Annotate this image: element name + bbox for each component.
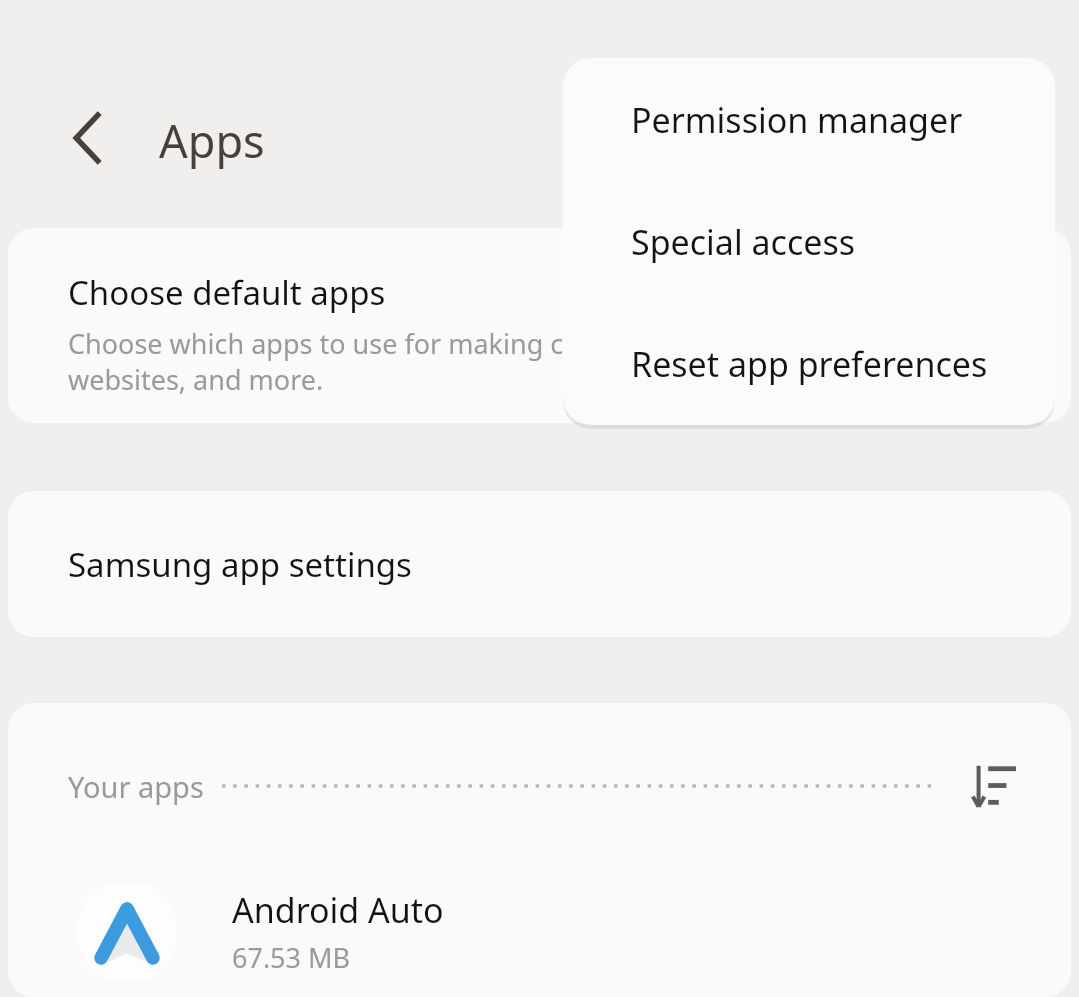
staticText: 67.53 MB bbox=[232, 939, 351, 976]
staticText: Android Auto bbox=[232, 887, 444, 933]
button[interactable]: Permission manager bbox=[563, 58, 1055, 181]
staticText: Samsung app settings bbox=[68, 542, 412, 587]
button[interactable]: Special access bbox=[563, 181, 1055, 303]
staticText: Special access bbox=[631, 219, 855, 265]
staticText: Reset app preferences bbox=[631, 341, 988, 387]
button[interactable]: Reset app preferences bbox=[563, 303, 1055, 425]
button[interactable]: Android Auto bbox=[8, 866, 1071, 997]
button[interactable]: Back bbox=[52, 98, 126, 178]
button[interactable]: Samsung app settings bbox=[8, 491, 1071, 637]
staticText: Choose default apps bbox=[68, 270, 386, 315]
staticText: Apps bbox=[159, 110, 265, 171]
staticText: Permission manager bbox=[631, 97, 963, 143]
staticText: Your apps bbox=[68, 767, 204, 806]
staticText: Choose which apps to use for making call… bbox=[68, 325, 840, 398]
button[interactable]: Choose default apps bbox=[8, 228, 1071, 423]
button[interactable]: Sort bbox=[957, 755, 1029, 817]
